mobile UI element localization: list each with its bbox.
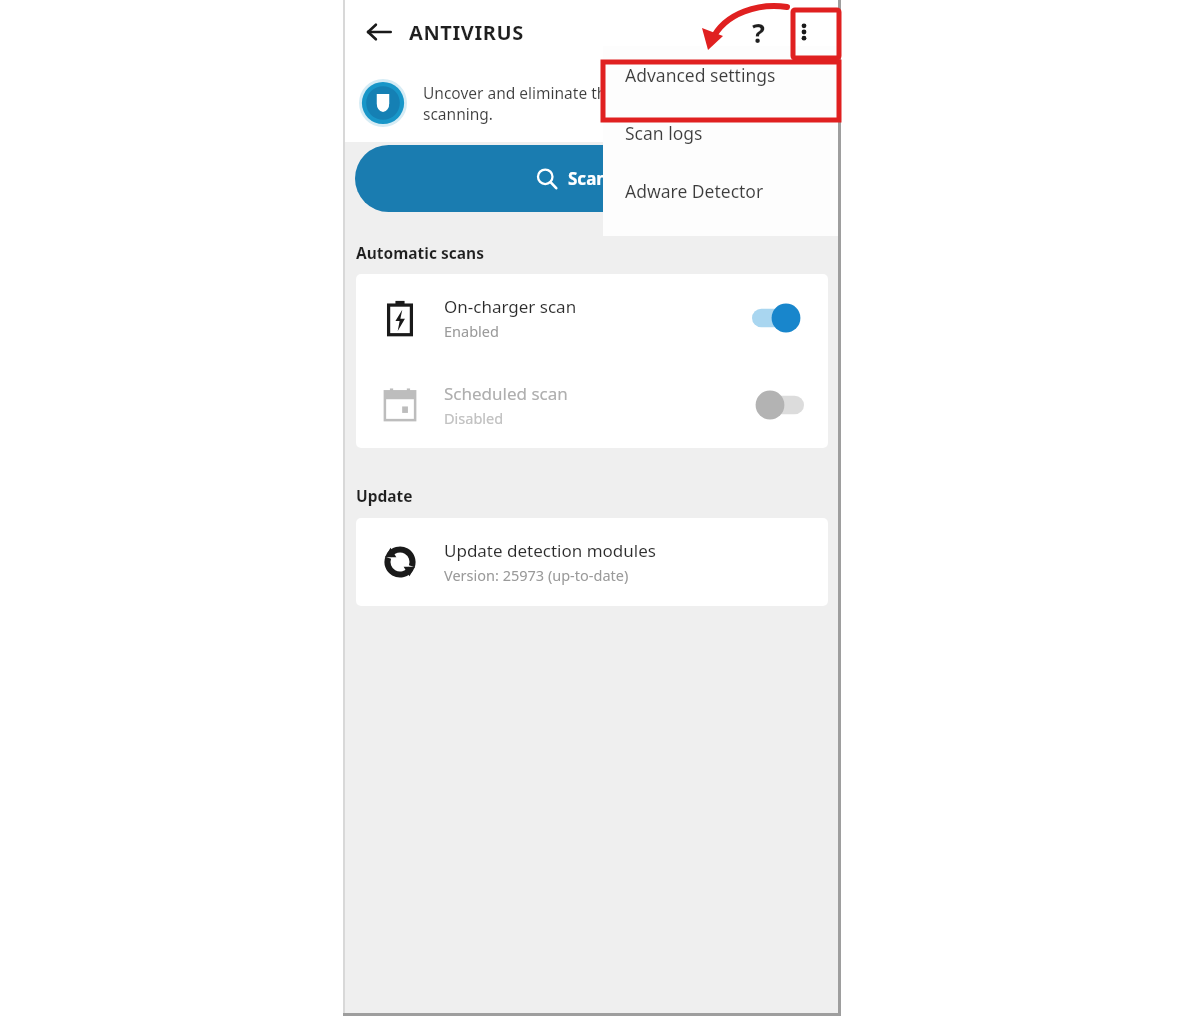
staticText: Scheduled scan (444, 382, 568, 405)
staticText: Automatic scans (356, 242, 484, 263)
button[interactable]: Advanced settings (603, 46, 841, 104)
staticText: On-charger scan (444, 295, 577, 318)
button[interactable]: More options (781, 9, 827, 55)
staticText: Enabled (444, 321, 499, 341)
button[interactable]: Back (357, 10, 401, 54)
staticText: ? (752, 14, 765, 51)
staticText: Advanced settings (625, 63, 776, 87)
staticText: Uncover and eliminate threats with scann… (423, 82, 679, 125)
staticText: Version: 25973 (up-to-date) (444, 565, 629, 585)
button[interactable]: Scan logs (603, 104, 841, 162)
staticText: Update (356, 485, 413, 506)
staticText: Scan logs (625, 121, 703, 145)
staticText: ANTIVIRUS (409, 19, 524, 46)
staticText: Adware Detector (625, 179, 764, 203)
button[interactable]: On-charger scan (356, 274, 828, 362)
button[interactable]: Adware Detector (603, 162, 841, 220)
button[interactable]: Scheduled scan (356, 362, 828, 448)
staticText: Update detection modules (444, 539, 656, 562)
staticText: Scan now (568, 167, 648, 190)
button[interactable]: Update detection modules (356, 518, 828, 606)
button[interactable]: Scan now (355, 145, 829, 212)
button[interactable]: Help (735, 9, 781, 55)
staticText: Disabled (444, 408, 504, 428)
